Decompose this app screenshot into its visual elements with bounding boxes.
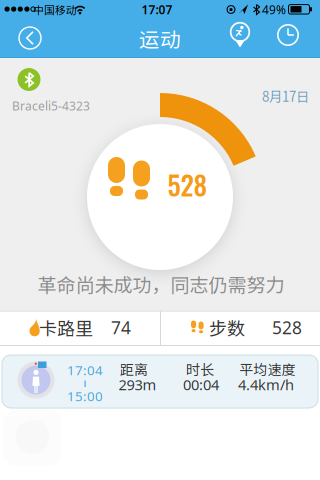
staticText: 平均速度	[239, 359, 295, 379]
staticText: 528	[272, 316, 302, 339]
staticText: 卡路里	[39, 314, 93, 341]
staticText: 时长	[186, 359, 214, 379]
staticText: 74	[111, 316, 131, 339]
button[interactable]: Activity map	[225, 21, 255, 51]
staticText: 4.4km/h	[238, 375, 294, 394]
staticText: 17:07	[141, 1, 172, 17]
button[interactable]: Workout 17:04 to 15:00, 距离 293m, 时长 00:0…	[0, 351, 320, 411]
staticText: 革命尚未成功，同志仍需努力	[37, 270, 284, 298]
staticText: 距离	[120, 359, 148, 379]
staticText: 49%	[262, 1, 286, 17]
staticText: 15:00	[67, 387, 103, 405]
staticText: 8月17日	[262, 86, 309, 106]
button[interactable]: Bluetooth device Braceli5-4323	[0, 68, 96, 112]
button[interactable]: 卡路里 74	[0, 310, 160, 345]
staticText: 00:04	[183, 375, 219, 394]
staticText: 步数	[209, 314, 245, 341]
staticText: 528	[167, 165, 207, 204]
button[interactable]: History	[275, 22, 301, 48]
staticText: 运动	[139, 23, 181, 53]
staticText: Braceli5-4323	[12, 98, 90, 114]
staticText: 中国移动	[33, 2, 77, 17]
staticText: 293m	[118, 375, 156, 394]
staticText: 17:04	[67, 361, 103, 379]
button[interactable]: Back	[13, 21, 47, 55]
button[interactable]: 步数 528	[160, 310, 320, 345]
